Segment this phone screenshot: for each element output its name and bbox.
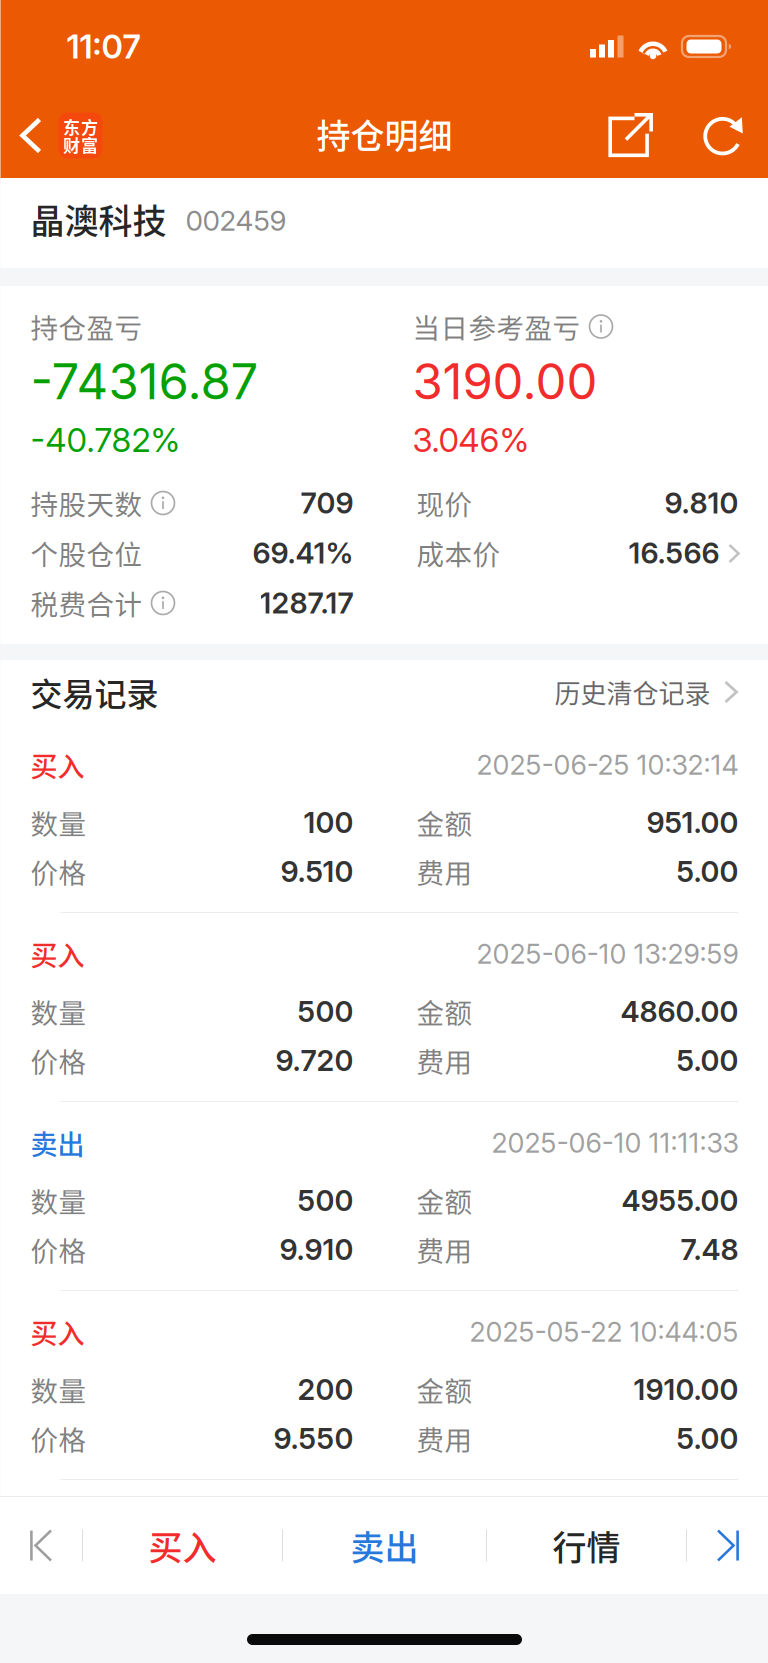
staticText: 金额 (416, 992, 472, 1031)
button[interactable]: Previous (0, 1497, 82, 1593)
staticText: 9.810 (664, 485, 738, 521)
staticText: 当日参考盈亏 (412, 307, 580, 346)
staticText: 7.48 (680, 1232, 738, 1267)
staticText: 9.720 (275, 1043, 353, 1078)
staticText: 951.00 (646, 805, 738, 840)
staticText: 金额 (416, 1181, 472, 1220)
staticText: 持仓盈亏 (30, 307, 142, 346)
staticText: 2025-06-10 13:29:59 (476, 938, 738, 970)
staticText: 价格 (30, 852, 86, 891)
staticText: 200 (297, 1372, 353, 1407)
staticText: 500 (297, 1183, 353, 1218)
staticText: 价格 (30, 1041, 86, 1080)
staticText: 2025-06-25 10:32:14 (476, 749, 738, 781)
staticText: 历史清仓记录 (554, 673, 710, 711)
staticText: 709 (300, 485, 353, 521)
staticText: 费用 (416, 1419, 472, 1458)
button[interactable]: Next (687, 1497, 768, 1593)
staticText: 卖出 (30, 1123, 84, 1163)
staticText: 002459 (185, 204, 286, 238)
staticText: 买入 (30, 1312, 84, 1352)
button[interactable]: 卖出 (283, 1497, 486, 1593)
staticText: 金额 (416, 1370, 472, 1409)
staticText: 东 (63, 114, 80, 139)
staticText: 4955.00 (621, 1183, 738, 1218)
staticText: 财 (63, 132, 80, 157)
staticText: 买入 (30, 934, 84, 974)
staticText: 3.046% (412, 420, 529, 460)
staticText: 个股仓位 (30, 533, 142, 573)
staticText: 数量 (30, 803, 86, 842)
button[interactable]: Refresh (702, 113, 747, 158)
button[interactable]: Back (0, 100, 116, 170)
staticText: 500 (297, 994, 353, 1029)
staticText: 9.550 (273, 1421, 353, 1456)
staticText: 1910.00 (633, 1372, 738, 1407)
staticText: 价格 (30, 1230, 86, 1269)
staticText: 数量 (30, 992, 86, 1031)
staticText: 4860.00 (620, 994, 738, 1029)
staticText: 数量 (30, 1181, 86, 1220)
staticText: 3190.00 (412, 352, 597, 411)
staticText: 费用 (416, 1230, 472, 1269)
staticText: 费用 (416, 1041, 472, 1080)
staticText: 2025-06-10 11:11:33 (491, 1127, 738, 1159)
staticText: 买入 (148, 1521, 216, 1570)
staticText: 富 (81, 132, 98, 157)
staticText: 现价 (416, 483, 472, 523)
button[interactable]: 买入 (83, 1497, 282, 1593)
staticText: 2025-05-22 10:44:05 (469, 1316, 738, 1348)
staticText: 100 (303, 805, 353, 840)
staticText: 卖出 (350, 1521, 418, 1570)
staticText: 价格 (30, 1419, 86, 1458)
staticText: 费用 (416, 852, 472, 891)
staticText: 税费合计 (30, 583, 142, 623)
staticText: 成本价 (416, 533, 500, 573)
staticText: -40.782% (30, 420, 180, 460)
staticText: 行情 (552, 1521, 620, 1570)
button[interactable]: 行情 (487, 1497, 686, 1593)
staticText: 16.566 (628, 535, 719, 571)
staticText: 5.00 (676, 1043, 738, 1078)
staticText: 持股天数 (30, 483, 142, 523)
staticText: -74316.87 (30, 352, 258, 411)
staticText: 持仓明细 (316, 109, 452, 159)
staticText: 5.00 (676, 1421, 738, 1456)
staticText: 9.510 (280, 854, 353, 889)
button[interactable]: 历史清仓记录 (554, 673, 736, 711)
staticText: 方 (81, 114, 98, 139)
staticText: 69.41% (252, 535, 353, 571)
staticText: 5.00 (676, 854, 738, 889)
staticText: 9.910 (279, 1232, 353, 1267)
staticText: 数量 (30, 1370, 86, 1409)
staticText: 买入 (30, 745, 84, 785)
staticText: 11:07 (66, 26, 140, 66)
staticText: 1287.17 (259, 585, 353, 621)
staticText: 金额 (416, 803, 472, 842)
staticText: 交易记录 (30, 669, 158, 715)
staticText: 晶澳科技 (30, 194, 166, 244)
button[interactable]: Share (607, 113, 652, 158)
